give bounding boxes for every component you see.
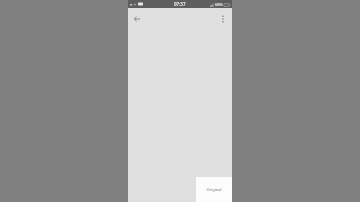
button[interactable]: Back xyxy=(129,11,145,27)
button[interactable]: Original xyxy=(196,177,232,202)
staticText: Original xyxy=(206,187,222,192)
button[interactable]: More options xyxy=(215,11,231,27)
staticText: 07:37 xyxy=(174,1,186,7)
staticText: 68% xyxy=(215,2,223,7)
